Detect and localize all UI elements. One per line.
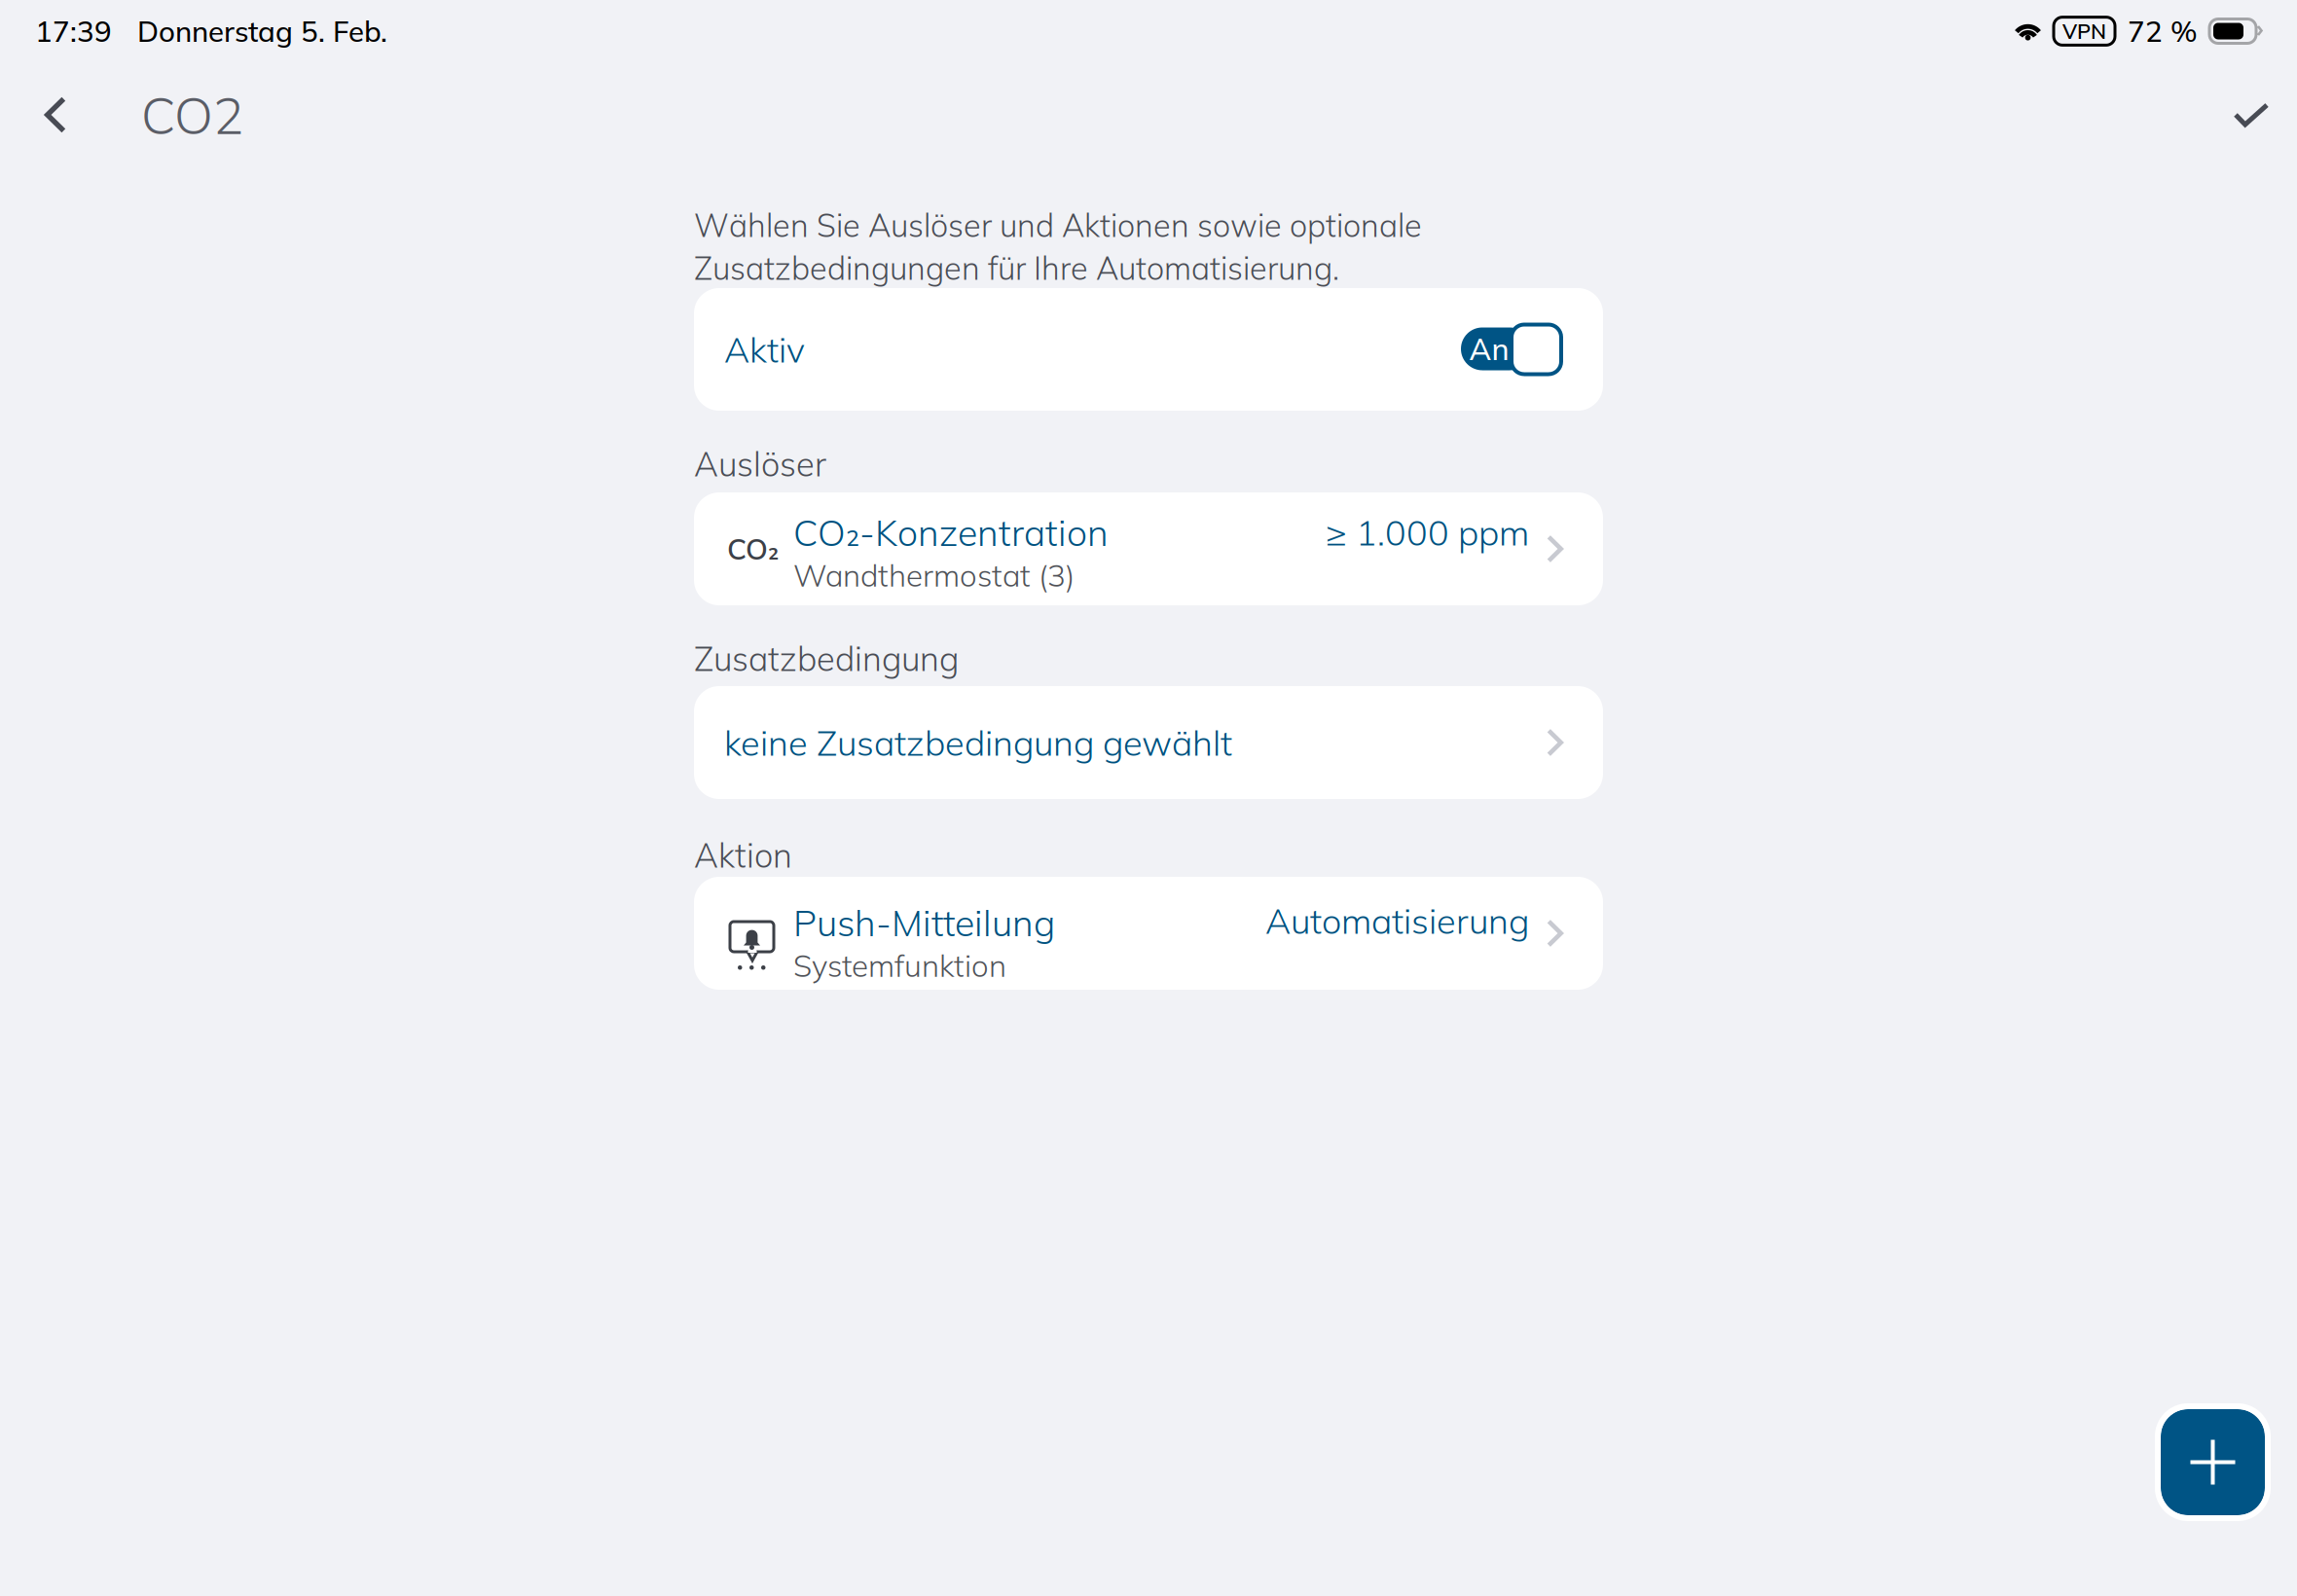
button[interactable]: Zurück bbox=[11, 66, 100, 163]
staticText: An bbox=[1469, 330, 1509, 368]
staticText: Aktiv bbox=[724, 327, 805, 371]
button[interactable]: CO₂ bbox=[694, 492, 1603, 605]
staticText: 17:39 bbox=[35, 13, 112, 49]
staticText: Donnerstag 5. Feb. bbox=[137, 13, 387, 49]
staticText: CO₂ bbox=[727, 531, 779, 567]
staticText: CO2 bbox=[141, 83, 243, 147]
staticText: Push-Mitteilung bbox=[793, 900, 1055, 945]
button[interactable]: Aktiv bbox=[694, 288, 1603, 411]
button[interactable]: keine Zusatzbedingung gewählt bbox=[694, 686, 1603, 799]
staticText: Wandthermostat (3) bbox=[793, 556, 1075, 594]
staticText: Auslöser bbox=[694, 443, 826, 485]
staticText: Systemfunktion bbox=[793, 946, 1006, 984]
staticText: VPN bbox=[2062, 18, 2106, 44]
staticText: Wählen Sie Auslöser und Aktionen sowie o… bbox=[694, 205, 1422, 245]
button[interactable]: Push-Mitteilung bbox=[694, 877, 1603, 990]
staticText: 72 % bbox=[2128, 13, 2198, 49]
button[interactable]: Hinzufügen bbox=[2161, 1409, 2265, 1515]
staticText: Aktion bbox=[694, 834, 792, 876]
staticText: Automatisierung bbox=[1265, 899, 1529, 943]
button[interactable]: Fertig bbox=[2219, 66, 2283, 163]
staticText: Zusatzbedingung bbox=[694, 637, 959, 679]
staticText: Zusatzbedingungen für Ihre Automatisieru… bbox=[694, 248, 1339, 288]
staticText: ≥ 1.000 ppm bbox=[1326, 510, 1529, 554]
staticText: keine Zusatzbedingung gewählt bbox=[724, 721, 1232, 765]
staticText: CO₂-Konzentration bbox=[793, 509, 1109, 555]
